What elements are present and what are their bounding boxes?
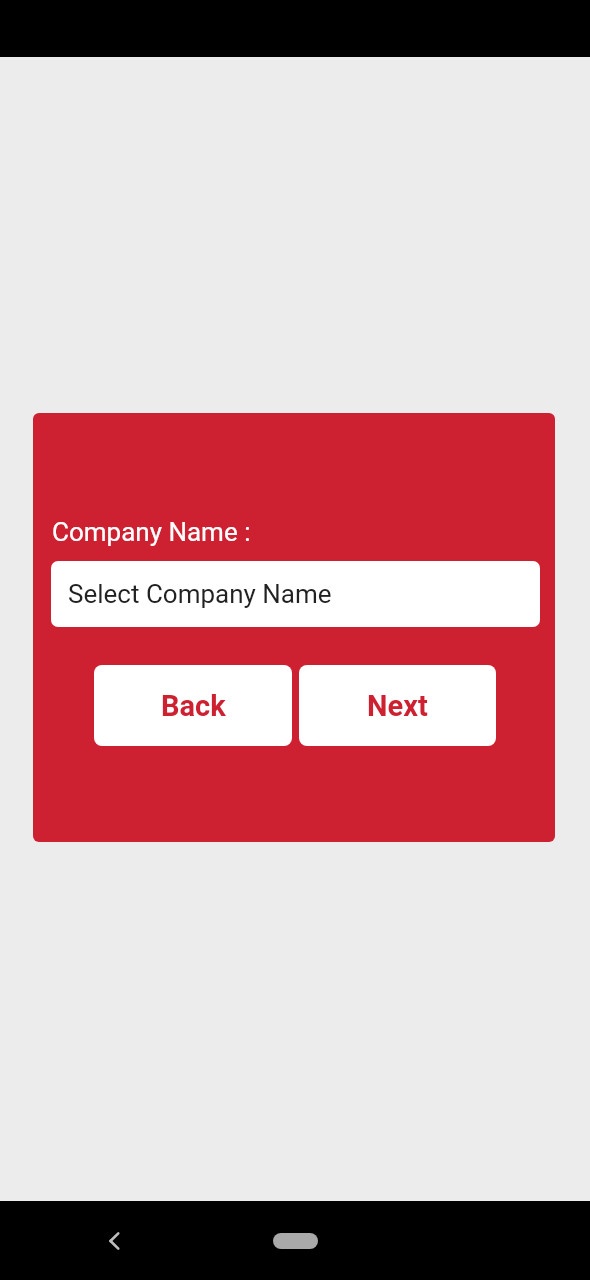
staticText: Company Name :: [52, 517, 251, 547]
staticText: Back: [161, 689, 226, 723]
button[interactable]: Select Company Name: [51, 561, 540, 627]
button[interactable]: Back: [89, 1216, 139, 1266]
button[interactable]: Home: [273, 1233, 318, 1249]
button[interactable]: Back: [94, 665, 292, 746]
staticText: Select Company Name: [68, 579, 332, 609]
button[interactable]: Next: [299, 665, 496, 746]
staticText: Next: [367, 689, 428, 723]
